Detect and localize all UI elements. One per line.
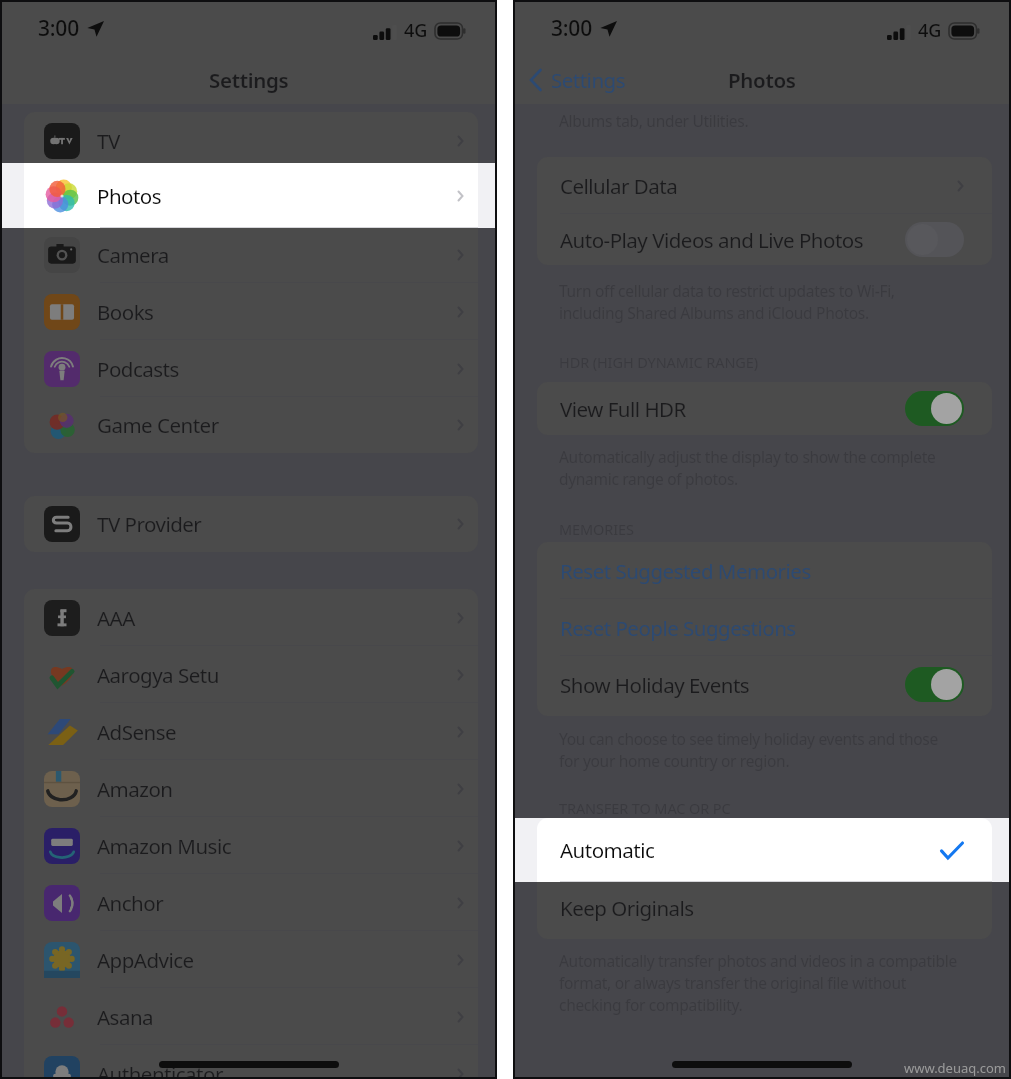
staticText: Anchor xyxy=(97,889,164,917)
button[interactable]: Photos xyxy=(24,163,478,228)
staticText: Automatic xyxy=(560,837,655,865)
staticText: including Shared Albums and iCloud Photo… xyxy=(559,302,869,323)
staticText: Settings xyxy=(209,66,289,94)
button[interactable]: Back to Settings xyxy=(529,66,626,94)
staticText: MEMORIES xyxy=(559,519,634,539)
staticText: Albums tab, under Utilities. xyxy=(559,110,749,131)
staticText: AdSense xyxy=(97,718,177,746)
staticText: 4G xyxy=(918,18,942,43)
staticText: Authenticator xyxy=(97,1060,223,1079)
staticText: AppAdvice xyxy=(97,946,194,974)
staticText: Amazon xyxy=(97,775,173,803)
staticText: Photos xyxy=(97,182,162,210)
button[interactable]: Keep Originals xyxy=(537,879,992,936)
button[interactable]: TV Provider xyxy=(24,496,478,552)
staticText: Amazon Music xyxy=(97,832,232,860)
staticText: www.deuaq.com xyxy=(904,1059,1007,1077)
button[interactable]: Amazon xyxy=(24,760,478,817)
staticText: Settings xyxy=(551,66,626,94)
button[interactable]: Automatic xyxy=(537,822,992,879)
button[interactable]: Reset Suggested Memories xyxy=(537,542,992,599)
staticText: Automatically adjust the display to show… xyxy=(559,446,936,467)
button[interactable]: Show Holiday Events xyxy=(537,656,992,713)
staticText: Cellular Data xyxy=(560,172,678,200)
button[interactable]: Reset People Suggestions xyxy=(537,599,992,656)
staticText: Show Holiday Events xyxy=(560,671,750,699)
button[interactable]: Authenticator xyxy=(24,1045,478,1079)
staticText: TV Provider xyxy=(97,510,202,538)
button[interactable]: Camera xyxy=(24,226,478,283)
staticText: HDR (HIGH DYNAMIC RANGE) xyxy=(559,352,759,372)
button[interactable]: AppAdvice xyxy=(24,931,478,988)
button[interactable]: Game Center xyxy=(24,397,478,453)
button[interactable]: View Full HDR xyxy=(537,382,992,435)
staticText: TV xyxy=(97,127,120,155)
button[interactable]: AAA xyxy=(24,589,478,646)
staticText: Reset Suggested Memories xyxy=(560,557,811,585)
staticText: 3:00 xyxy=(551,14,592,43)
staticText: View Full HDR xyxy=(560,395,686,423)
button[interactable]: TV xyxy=(24,112,478,169)
staticText: 3:00 xyxy=(38,14,79,43)
staticText: format, or always transfer the original … xyxy=(559,972,906,993)
button[interactable]: Auto-Play Videos and Live Photos xyxy=(537,214,992,265)
staticText: Automatic xyxy=(560,836,655,864)
button[interactable]: Anchor xyxy=(24,874,478,931)
staticText: Photos xyxy=(728,66,796,94)
button[interactable]: Aarogya Setu xyxy=(24,646,478,703)
staticText: Automatically transfer photos and videos… xyxy=(559,950,957,971)
staticText: Books xyxy=(97,298,154,326)
staticText: Keep Originals xyxy=(560,894,694,922)
staticText: AAA xyxy=(97,604,135,632)
staticText: Turn off cellular data to restrict updat… xyxy=(559,280,895,301)
staticText: Camera xyxy=(97,241,169,269)
staticText: 4G xyxy=(404,18,428,43)
button[interactable]: AdSense xyxy=(24,703,478,760)
button[interactable]: Toggle xyxy=(905,391,964,426)
button[interactable]: Books xyxy=(24,283,478,340)
staticText: Aarogya Setu xyxy=(97,661,219,689)
button[interactable]: Toggle xyxy=(905,667,964,702)
button[interactable]: Amazon Music xyxy=(24,817,478,874)
staticText: Podcasts xyxy=(97,355,179,383)
staticText: Photos xyxy=(97,184,162,212)
button[interactable]: Toggle xyxy=(905,222,964,257)
staticText: for your home country or region. xyxy=(559,750,790,771)
button[interactable]: Photos xyxy=(24,169,478,226)
staticText: You can choose to see timely holiday eve… xyxy=(559,728,938,749)
button[interactable]: Asana xyxy=(24,988,478,1045)
button[interactable]: Podcasts xyxy=(24,340,478,397)
staticText: Reset People Suggestions xyxy=(560,614,796,642)
staticText: checking for compatibility. xyxy=(559,994,743,1015)
button[interactable]: Cellular Data xyxy=(537,157,992,214)
staticText: Auto-Play Videos and Live Photos xyxy=(560,226,863,254)
staticText: Asana xyxy=(97,1003,154,1031)
staticText: TRANSFER TO MAC OR PC xyxy=(559,798,731,818)
staticText: dynamic range of photos. xyxy=(559,468,738,489)
staticText: Game Center xyxy=(97,411,219,439)
button[interactable]: Automatic xyxy=(537,818,992,882)
